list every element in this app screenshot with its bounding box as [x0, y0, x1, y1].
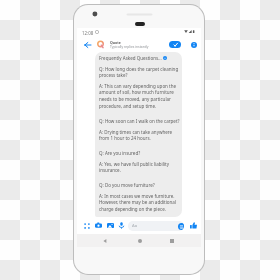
button[interactable]: Back [81, 38, 93, 51]
button[interactable]: Message input [128, 221, 184, 231]
button[interactable]: Choose a sticker or emoji [177, 222, 184, 230]
staticText: Q: How long does the carpet cleaning pro… [99, 66, 180, 78]
staticText: A: This can vary depending upon the amou… [99, 83, 180, 109]
button[interactable]: Take photo [94, 219, 103, 232]
button[interactable]: Back [100, 234, 109, 247]
staticText: A: Yes, we have full public liability in… [99, 161, 180, 173]
staticText: Aa [132, 223, 138, 229]
staticText: A: In most cases we move furniture. Howe… [99, 193, 180, 212]
button[interactable]: Home [135, 234, 144, 247]
staticText: Frequently Asked Questions... [99, 55, 162, 61]
staticText: 12:08 [82, 30, 94, 36]
button[interactable]: Conversation information [188, 38, 200, 51]
button[interactable]: Verified account badge [169, 41, 181, 48]
button[interactable]: Choose photo [106, 219, 115, 232]
staticText: A: Drying times can take anywhere from 1… [99, 129, 180, 141]
button[interactable]: Recent apps [167, 234, 176, 247]
staticText: Q: Do you move furniture? [99, 182, 155, 188]
button[interactable]: Send a like [189, 219, 197, 232]
button[interactable]: Record voice message [117, 219, 126, 232]
staticText: Quote [110, 40, 121, 45]
staticText: Q: How soon can I walk on the carpet? [99, 118, 180, 124]
staticText: Typically replies instantly [110, 44, 149, 48]
button[interactable]: Open app drawer [82, 219, 91, 232]
staticText: Q: Are you insured? [99, 150, 141, 156]
button[interactable]: Frequently Asked Questions... [95, 52, 182, 217]
